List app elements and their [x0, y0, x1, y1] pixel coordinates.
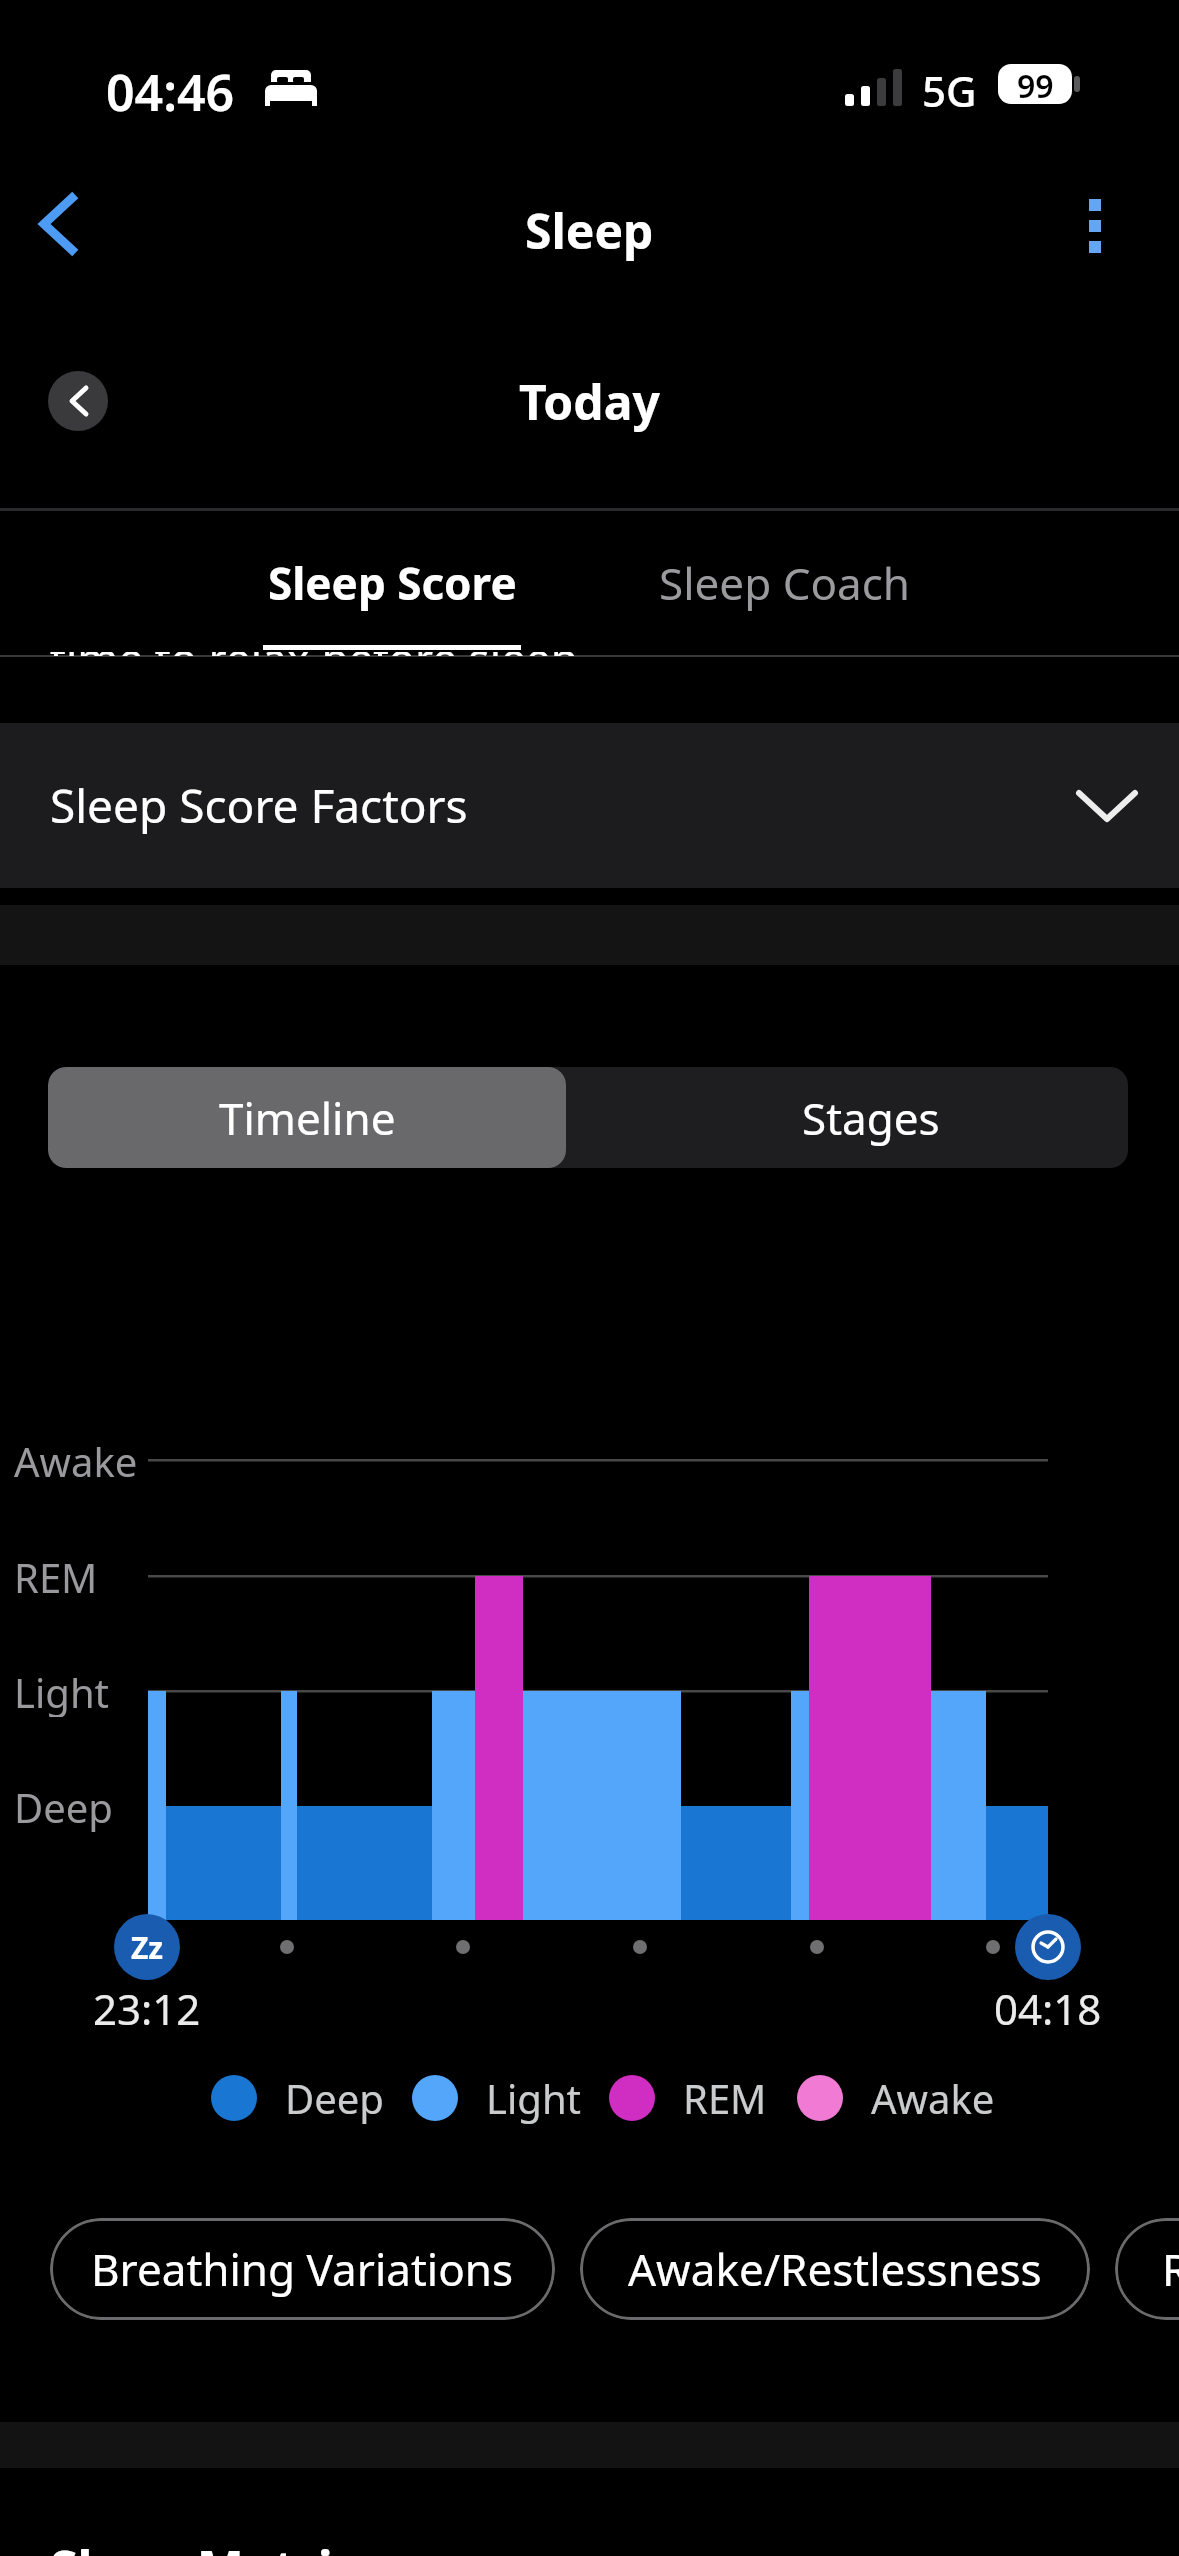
button[interactable] [48, 371, 108, 431]
staticText: Timeline [219, 1088, 396, 1148]
staticText: 23:12 [93, 1980, 201, 2032]
staticText: REM [683, 2071, 767, 2125]
button[interactable]: Sleep Coach [590, 515, 980, 650]
staticText: Stages [802, 1088, 940, 1148]
button[interactable]: Stages [566, 1067, 1128, 1168]
staticText: Sleep Score Factors [50, 774, 468, 837]
staticText: Deep [14, 1780, 113, 1832]
staticText: Sleep Score [268, 553, 517, 613]
staticText: 5G [922, 62, 977, 119]
button[interactable]: Sleep Score [197, 515, 587, 650]
staticText: Sleep Coach [659, 553, 911, 613]
staticText: Breathing Variations [91, 2239, 514, 2299]
staticText: Awake [14, 1434, 138, 1486]
staticText: Today [519, 369, 660, 434]
button[interactable]: Sleep Score Factors [0, 723, 1179, 888]
staticText: 04:18 [994, 1980, 1102, 2032]
staticText: time to relax before sleep. [50, 652, 590, 656]
staticText: 04:46 [106, 58, 235, 126]
staticText: Sleep [525, 198, 654, 263]
staticText: Awake/Restlessness [628, 2239, 1042, 2299]
staticText: 99 [1017, 64, 1054, 104]
button[interactable]: Breathing Variations [50, 2218, 555, 2320]
button[interactable] [1083, 199, 1107, 259]
staticText: Awake [871, 2071, 995, 2125]
button[interactable] [40, 196, 72, 252]
button[interactable]: Awake/Restlessness [580, 2218, 1090, 2320]
staticText: REM [14, 1550, 98, 1602]
staticText: Light [486, 2071, 582, 2125]
staticText: Light [14, 1665, 110, 1717]
button[interactable]: Timeline [48, 1067, 566, 1168]
button[interactable]: Restless Moments [1115, 2218, 1179, 2320]
staticText: Restless Moments [1162, 2239, 1179, 2299]
staticText: Deep [285, 2071, 384, 2125]
staticText: Zz [131, 1927, 164, 1967]
staticText: Sleep Metrics [50, 2534, 384, 2556]
